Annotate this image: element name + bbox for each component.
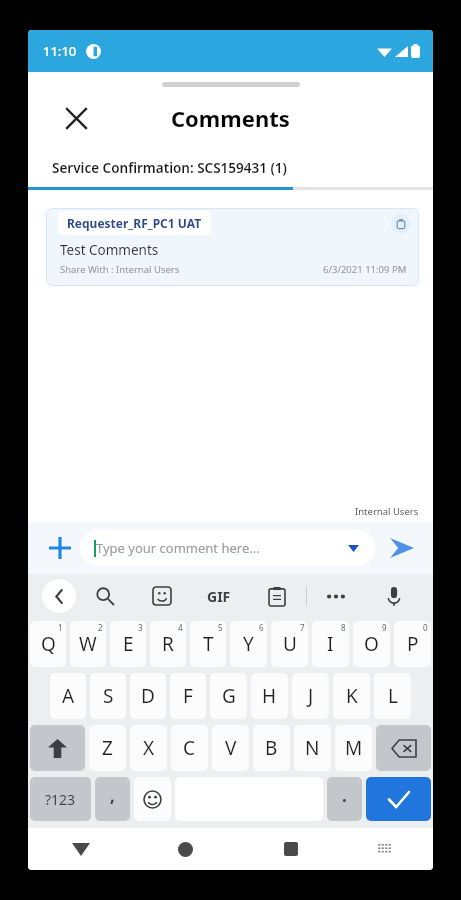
staticText: H — [262, 683, 277, 709]
staticText: GIF — [207, 587, 231, 606]
staticText: V — [225, 735, 237, 761]
button[interactable]: Add attachment — [40, 528, 80, 568]
button[interactable]: P — [394, 621, 431, 667]
staticText: T — [203, 631, 214, 657]
staticText: Y — [243, 631, 254, 657]
button[interactable]: Delete comment — [391, 214, 411, 234]
staticText: 0 — [423, 622, 428, 633]
staticText: Requester_RF_PC1 UAT — [67, 215, 202, 231]
button[interactable]: Send — [381, 527, 423, 569]
staticText: M — [345, 735, 363, 761]
staticText: Service Confirmation: SCS159431 (1) — [52, 159, 287, 177]
button[interactable]: Search — [76, 574, 133, 618]
staticText: P — [407, 631, 419, 657]
button[interactable]: X — [130, 725, 167, 771]
staticText: X — [143, 735, 155, 761]
button[interactable]: R — [150, 621, 186, 667]
button[interactable]: More options — [307, 574, 365, 618]
button[interactable]: O — [353, 621, 390, 667]
staticText: Type your comment here... — [96, 539, 260, 557]
staticText: 4 — [178, 622, 183, 633]
button[interactable]: T — [190, 621, 226, 667]
button[interactable]: Voice input — [365, 574, 423, 618]
staticText: Z — [102, 735, 113, 761]
button[interactable]: Home — [133, 828, 238, 870]
staticText: Internal Users — [355, 505, 419, 518]
button[interactable]: Recents — [238, 828, 343, 870]
staticText: 9 — [382, 622, 387, 633]
button[interactable]: W — [70, 621, 106, 667]
button[interactable]: GIF — [190, 574, 248, 618]
button[interactable]: I — [312, 621, 349, 667]
button[interactable]: F — [170, 673, 206, 719]
button[interactable]: M — [335, 725, 372, 771]
button[interactable]: Clipboard — [248, 574, 306, 618]
staticText: N — [305, 735, 320, 761]
button[interactable]: Type your comment here... — [80, 530, 375, 566]
button[interactable]: Shift — [30, 725, 85, 771]
button[interactable]: Service Confirmation: SCS159431 (1) — [28, 149, 433, 187]
staticText: 8 — [341, 622, 346, 633]
staticText: 5 — [218, 622, 223, 633]
staticText: S — [103, 683, 114, 709]
staticText: . — [342, 784, 347, 807]
staticText: Q — [41, 631, 56, 657]
staticText: Comments — [171, 103, 290, 133]
button[interactable]: Requester_RF_PC1 UAT — [46, 208, 419, 286]
staticText: , — [110, 784, 115, 807]
button[interactable]: S — [90, 673, 126, 719]
staticText: L — [388, 683, 398, 709]
button[interactable]: A — [50, 673, 86, 719]
staticText: 11:10 — [43, 42, 77, 60]
staticText: 1 — [58, 622, 63, 633]
staticText: B — [265, 735, 278, 761]
staticText: K — [346, 683, 358, 709]
staticText: R — [162, 631, 174, 657]
button[interactable]: D — [130, 673, 166, 719]
button[interactable]: C — [171, 725, 208, 771]
staticText: 2 — [98, 622, 103, 633]
button[interactable]: Q — [30, 621, 66, 667]
staticText: 6 — [259, 622, 264, 633]
button[interactable]: Period — [327, 777, 362, 821]
button[interactable]: K — [333, 673, 370, 719]
button[interactable]: Symbols — [30, 777, 91, 821]
staticText: 6/3/2021 11:09 PM — [323, 263, 407, 276]
button[interactable]: Emoji — [134, 777, 171, 821]
staticText: E — [123, 631, 134, 657]
button[interactable]: Close — [58, 100, 94, 136]
button[interactable]: Back — [42, 579, 76, 613]
staticText: J — [308, 683, 314, 709]
button[interactable]: Back — [28, 828, 133, 870]
button[interactable]: V — [212, 725, 249, 771]
staticText: A — [62, 683, 75, 709]
button[interactable]: Keyboard layout — [343, 828, 427, 870]
staticText: F — [183, 683, 193, 709]
button[interactable]: H — [251, 673, 288, 719]
staticText: W — [79, 631, 97, 657]
button[interactable]: Stickers — [133, 574, 190, 618]
staticText: D — [141, 683, 155, 709]
staticText: O — [364, 631, 379, 657]
button[interactable]: E — [110, 621, 146, 667]
button[interactable]: N — [294, 725, 331, 771]
button[interactable]: L — [374, 673, 411, 719]
staticText: C — [183, 735, 196, 761]
staticText: Test Comments — [60, 241, 159, 259]
staticText: 7 — [300, 622, 305, 633]
staticText: ?123 — [45, 790, 76, 809]
button[interactable]: Z — [89, 725, 126, 771]
button[interactable]: U — [271, 621, 308, 667]
button[interactable]: G — [210, 673, 247, 719]
button[interactable]: J — [292, 673, 329, 719]
staticText: I — [327, 631, 334, 657]
staticText: Share With : Internal Users — [60, 263, 180, 276]
button[interactable]: Done — [366, 777, 431, 821]
button[interactable]: Backspace — [376, 725, 431, 771]
staticText: U — [283, 631, 297, 657]
button[interactable]: B — [253, 725, 290, 771]
button[interactable]: Y — [230, 621, 267, 667]
staticText: G — [222, 683, 236, 709]
button[interactable]: Comma — [95, 777, 130, 821]
